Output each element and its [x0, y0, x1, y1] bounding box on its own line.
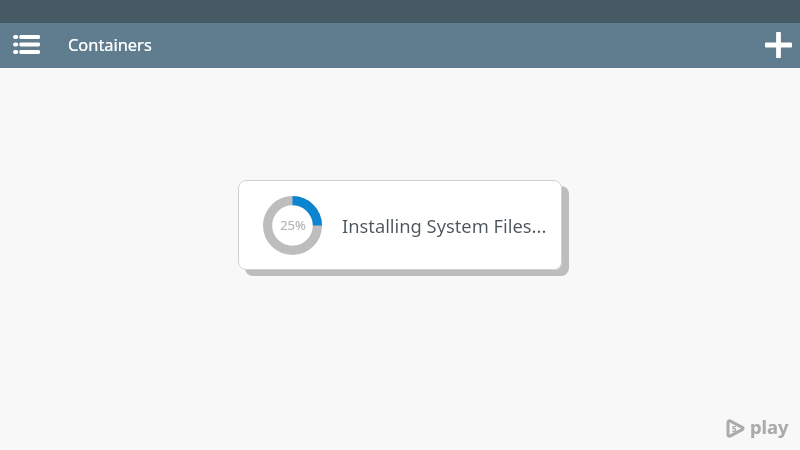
- staticText: play: [750, 414, 789, 439]
- staticText: Installing System Files...: [342, 213, 547, 238]
- staticText: 5: [732, 423, 737, 434]
- staticText: 25%: [280, 216, 306, 234]
- button[interactable]: Add: [756, 23, 800, 67]
- button[interactable]: Menu: [4, 22, 48, 66]
- staticText: Containers: [68, 33, 152, 55]
- button[interactable]: 25%: [238, 180, 562, 270]
